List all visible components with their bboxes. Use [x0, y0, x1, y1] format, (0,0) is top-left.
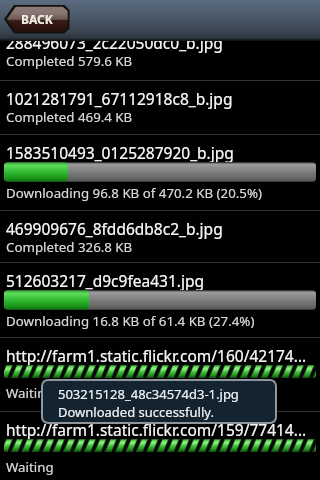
staticText: Completed 469.4 KB: [6, 108, 133, 126]
staticText: 469909676_8fdd6db8c2_b.jpg: [6, 218, 223, 239]
button[interactable]: http://farm1.static.flickr.com/159/77414…: [0, 412, 320, 480]
button[interactable]: 1021281791_67112918c8_b.jpg: [0, 81, 320, 134]
staticText: Waiting: [6, 384, 54, 402]
staticText: http://farm1.static.flickr.com/159/77414…: [6, 419, 307, 440]
staticText: Completed 326.8 KB: [6, 238, 133, 256]
staticText: 1021281791_67112918c8_b.jpg: [6, 88, 233, 109]
staticText: Downloading 96.8 KB of 470.2 KB (20.5%): [6, 184, 262, 202]
staticText: Downloading 16.8 KB of 61.4 KB (27.4%): [6, 312, 255, 330]
staticText: Waiting: [6, 458, 54, 476]
staticText: Downloaded successfully.: [58, 403, 214, 421]
staticText: BACK: [21, 11, 53, 27]
button[interactable]: 288496073_2c22050dc0_b.jpg: [0, 41, 320, 80]
staticText: http://farm1.static.flickr.com/160/42174…: [6, 345, 307, 366]
button[interactable]: http://farm1.static.flickr.com/160/42174…: [0, 338, 320, 411]
staticText: 512603217_d9c9fea431.jpg: [6, 270, 204, 291]
staticText: Completed 579.6 KB: [6, 52, 133, 70]
staticText: 288496073_2c22050dc0_b.jpg: [6, 41, 223, 53]
button[interactable]: 1583510493_0125287920_b.jpg: [0, 135, 320, 210]
button[interactable]: 469909676_8fdd6db8c2_b.jpg: [0, 211, 320, 262]
staticText: 1583510493_0125287920_b.jpg: [6, 142, 234, 163]
staticText: 503215128_48c34574d3-1.jpg: [58, 385, 239, 403]
button[interactable]: Back: [0, 0, 70, 34]
button[interactable]: 512603217_d9c9fea431.jpg: [0, 263, 320, 337]
